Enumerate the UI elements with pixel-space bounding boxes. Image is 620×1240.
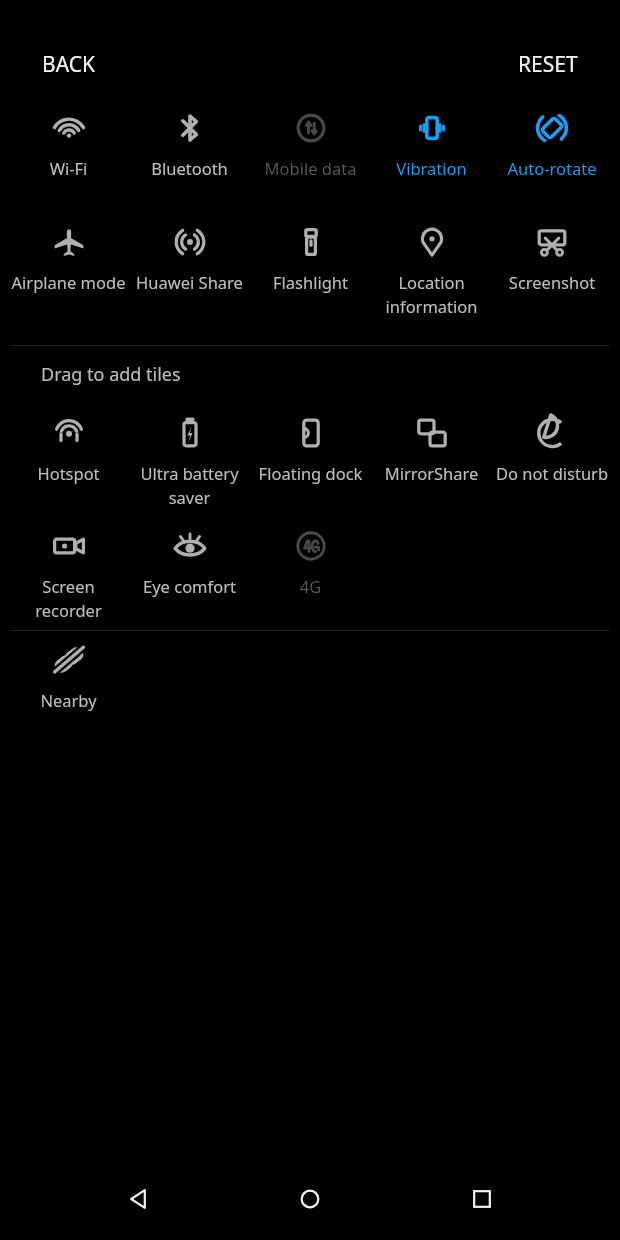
staticText: Screen recorder bbox=[10, 575, 127, 622]
button[interactable]: Mobile data bbox=[250, 100, 371, 179]
button[interactable]: Screenshot bbox=[492, 214, 612, 293]
staticText: Nearby bbox=[10, 689, 127, 711]
staticText: Floating dock bbox=[252, 462, 369, 484]
button[interactable]: Airplane mode bbox=[8, 214, 129, 293]
button[interactable]: Ultra battery saver bbox=[129, 405, 250, 509]
staticText: Ultra battery saver bbox=[131, 462, 248, 509]
button[interactable]: Eye comfort bbox=[129, 518, 250, 597]
button[interactable]: Back bbox=[104, 1165, 172, 1233]
button[interactable]: 4G bbox=[250, 518, 371, 597]
staticText: Bluetooth bbox=[131, 157, 248, 179]
staticText: Location information bbox=[373, 271, 490, 318]
button[interactable]: Vibration bbox=[371, 100, 492, 179]
staticText: Wi-Fi bbox=[10, 157, 127, 179]
button[interactable]: Floating dock bbox=[250, 405, 371, 484]
staticText: Auto-rotate bbox=[494, 157, 610, 179]
staticText: MirrorShare bbox=[373, 462, 490, 484]
staticText: RESET bbox=[518, 50, 578, 79]
staticText: 4G bbox=[252, 575, 369, 597]
staticText: BACK bbox=[42, 50, 95, 79]
staticText: Mobile data bbox=[252, 157, 369, 179]
button[interactable]: Auto-rotate bbox=[492, 100, 612, 179]
button[interactable]: Screen recorder bbox=[8, 518, 129, 622]
staticText: Screenshot bbox=[494, 271, 610, 293]
staticText: Huawei Share bbox=[131, 271, 248, 293]
button[interactable]: Huawei Share bbox=[129, 214, 250, 293]
button[interactable]: Recents bbox=[448, 1165, 516, 1233]
button[interactable]: Location information bbox=[371, 214, 492, 318]
button[interactable]: Nearby bbox=[8, 632, 129, 711]
button[interactable]: Home bbox=[276, 1165, 344, 1233]
button[interactable]: Hotspot bbox=[8, 405, 129, 484]
staticText: Do not disturb bbox=[494, 462, 610, 484]
button[interactable]: Do not disturb bbox=[492, 405, 612, 484]
staticText: Flashlight bbox=[252, 271, 369, 293]
staticText: Vibration bbox=[373, 157, 490, 179]
button[interactable]: Bluetooth bbox=[129, 100, 250, 179]
button[interactable]: RESET bbox=[496, 40, 600, 89]
button[interactable]: MirrorShare bbox=[371, 405, 492, 484]
staticText: Eye comfort bbox=[131, 575, 248, 597]
button[interactable]: Flashlight bbox=[250, 214, 371, 293]
button[interactable]: Wi-Fi bbox=[8, 100, 129, 179]
staticText: Airplane mode bbox=[10, 271, 127, 293]
staticText: Drag to add tiles bbox=[41, 362, 181, 387]
staticText: Hotspot bbox=[10, 462, 127, 484]
button[interactable]: BACK bbox=[20, 40, 117, 89]
